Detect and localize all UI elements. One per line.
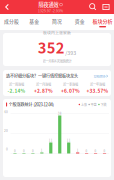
staticText: 隔夜通效 — [38, 1, 58, 8]
staticText: 0 — [14, 149, 16, 153]
staticText: 板块分析 — [93, 17, 113, 25]
staticText: 0 — [103, 149, 105, 153]
staticText: 平盘 — [91, 102, 97, 107]
staticText: /393 — [65, 49, 76, 57]
staticText: +6.07% — [61, 87, 80, 94]
staticText: 40 — [4, 109, 8, 114]
staticText: 近一月涨幅 — [36, 82, 51, 87]
staticText: 下跌 — [100, 102, 106, 107]
staticText: 查看更多 — [93, 73, 105, 78]
button[interactable]: 资金 — [68, 14, 91, 30]
staticText: 1 — [41, 148, 43, 152]
staticText: 近一月有4次涨跌统计 — [42, 59, 71, 63]
staticText: 简况 — [52, 18, 62, 25]
staticText: 0 — [23, 149, 25, 153]
staticText: 38 — [58, 111, 62, 115]
staticText: 板块内上涨家数 — [43, 30, 71, 35]
staticText: 352 — [38, 36, 65, 58]
staticText: 个股涨跌统计 (2023-12-04) — [8, 101, 53, 107]
staticText: 选不好细分板块？一键行情挖掘板块龙头 — [6, 73, 78, 79]
staticText: 11 — [49, 138, 53, 142]
button[interactable]: 板块分析 — [91, 14, 114, 30]
staticText: 近一季涨幅 — [63, 82, 78, 87]
button[interactable]: 隔夜通效 — [38, 1, 63, 13]
button[interactable]: More — [101, 2, 111, 12]
button[interactable]: Back — [1, 0, 13, 14]
staticText: 上涨 — [81, 102, 87, 107]
button[interactable]: 成分股 — [0, 14, 23, 30]
staticText: +33.57% — [86, 87, 108, 94]
staticText: 11 — [67, 138, 71, 142]
staticText: +2.87% — [34, 87, 53, 94]
staticText: -2.14% — [7, 87, 25, 94]
staticText: 20 — [4, 128, 8, 133]
staticText: 0 — [32, 149, 34, 153]
button[interactable]: Search — [88, 2, 98, 12]
staticText: 近一周涨幅 — [9, 82, 24, 87]
staticText: 近一年涨幅 — [90, 82, 105, 87]
button[interactable]: 简况 — [46, 14, 68, 30]
staticText: 0 — [86, 149, 88, 153]
staticText: 资金 — [75, 18, 85, 25]
staticText: 1 — [77, 148, 79, 152]
staticText: 0 — [95, 149, 97, 153]
staticText: 基金 — [29, 18, 39, 25]
staticText: 成分股 — [4, 18, 19, 25]
staticText: 0 — [6, 147, 8, 151]
staticText: 1325.97 -2.93% — [38, 8, 63, 13]
button[interactable]: 查看更多 — [93, 73, 108, 78]
button[interactable]: 基金 — [23, 14, 46, 30]
